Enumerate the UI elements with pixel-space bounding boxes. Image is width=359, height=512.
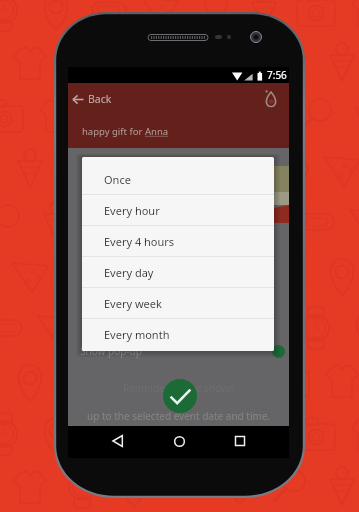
staticText: Back	[88, 92, 112, 106]
button[interactable]: Every month	[82, 319, 274, 349]
staticText: 7:56	[267, 68, 287, 82]
button[interactable]: Show pop-up	[80, 344, 285, 358]
staticText: Every day	[104, 265, 154, 280]
staticText: Every month	[104, 327, 170, 342]
button[interactable]: Every day	[82, 257, 274, 287]
staticText: Anna	[145, 125, 169, 138]
staticText: happy gift for	[82, 125, 145, 138]
staticText: Show pop-up	[80, 344, 142, 358]
button[interactable]: Recent apps	[215, 425, 265, 457]
button[interactable]: Every 4 hours	[82, 226, 274, 256]
staticText: Reminder will be shown	[123, 381, 235, 395]
button[interactable]: Every week	[82, 288, 274, 318]
button[interactable]: Once	[82, 164, 274, 194]
staticText: up to the selected event date and time.	[87, 409, 271, 423]
button[interactable]: Water drop	[260, 88, 282, 110]
staticText: Every 4 hours	[104, 234, 175, 249]
staticText: Every hour	[104, 203, 160, 218]
staticText: Once	[104, 172, 131, 187]
button[interactable]: Every hour	[82, 195, 274, 225]
button[interactable]: Home	[154, 425, 204, 457]
button[interactable]: Back	[93, 425, 143, 457]
button[interactable]: Back	[68, 86, 122, 112]
staticText: Every week	[104, 296, 162, 311]
button[interactable]: Confirm	[163, 379, 197, 413]
